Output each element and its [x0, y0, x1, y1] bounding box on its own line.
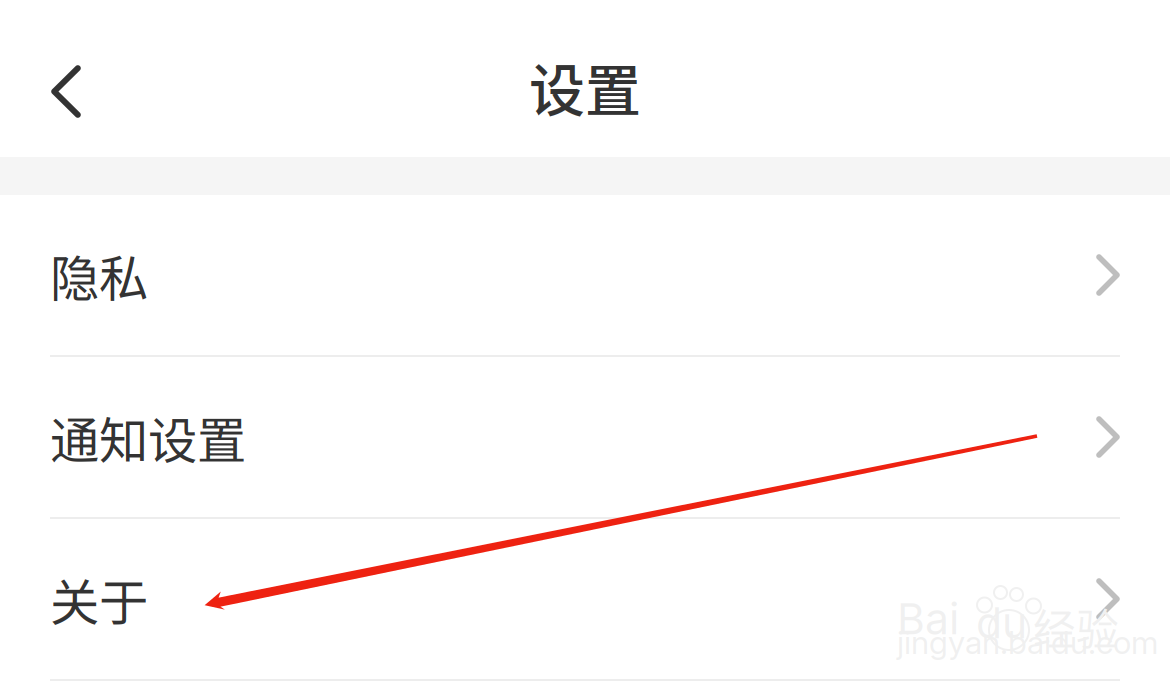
staticText: jingyan.baidu.com	[897, 623, 1158, 662]
button[interactable]: Back	[0, 0, 141, 157]
staticText: 通知设置	[50, 401, 246, 473]
staticText: 经验	[1033, 596, 1119, 658]
staticText: du	[976, 597, 1027, 649]
button[interactable]: 通知设置	[0, 357, 1170, 517]
staticText: 关于	[50, 563, 148, 635]
staticText: 设置	[529, 46, 641, 127]
staticText: 隐私	[50, 239, 148, 311]
button[interactable]: 关于	[0, 519, 1170, 679]
button[interactable]: 隐私	[0, 195, 1170, 355]
staticText: Bai	[897, 593, 959, 645]
